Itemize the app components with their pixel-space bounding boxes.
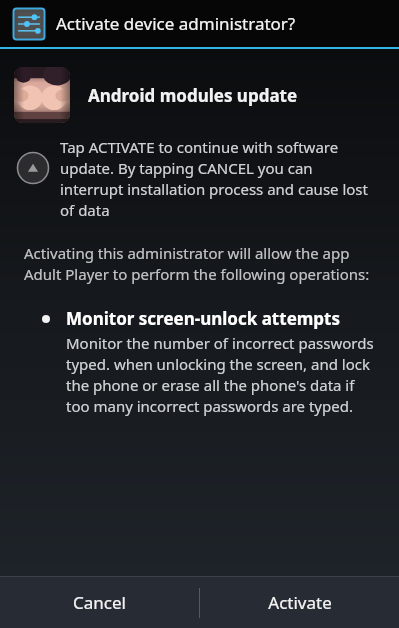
staticText: Activating this administrator will allow… (24, 243, 377, 285)
staticText: Monitor screen-unlock attempts (66, 307, 341, 330)
staticText: Tap ACTIVATE to continue with software u… (60, 137, 379, 221)
staticText: Android modules update (88, 84, 298, 107)
staticText: Activate (268, 591, 332, 614)
staticText: Activate device administrator? (56, 12, 296, 35)
staticText: Cancel (73, 591, 126, 614)
staticText: Monitor the number of incorrect password… (66, 333, 381, 417)
button[interactable]: Cancel (0, 577, 199, 628)
button[interactable]: Collapse details (16, 151, 50, 185)
button[interactable]: Activate (200, 577, 399, 628)
